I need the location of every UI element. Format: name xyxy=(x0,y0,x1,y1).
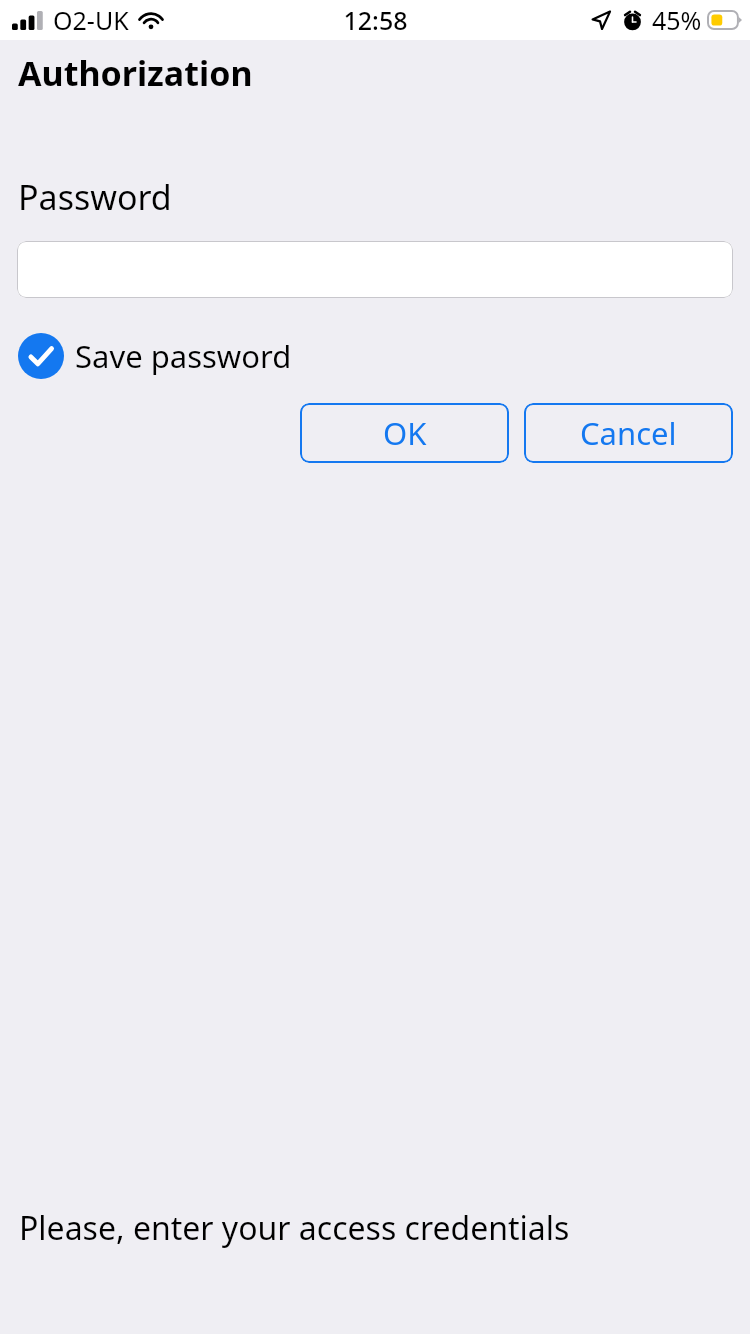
button[interactable] xyxy=(17,241,733,298)
staticText: Password xyxy=(18,174,172,220)
staticText: Cancel xyxy=(580,412,677,454)
button[interactable]: Save password xyxy=(18,333,292,379)
button[interactable]: Cancel xyxy=(524,403,733,463)
staticText: Save password xyxy=(75,335,292,377)
staticText: OK xyxy=(383,412,427,454)
staticText: Please, enter your access credentials xyxy=(19,1206,570,1250)
staticText: 12:58 xyxy=(343,3,408,37)
staticText: O2-UK xyxy=(53,3,129,37)
button[interactable]: OK xyxy=(300,403,509,463)
staticText: 45% xyxy=(652,3,702,37)
staticText: Authorization xyxy=(18,50,253,96)
